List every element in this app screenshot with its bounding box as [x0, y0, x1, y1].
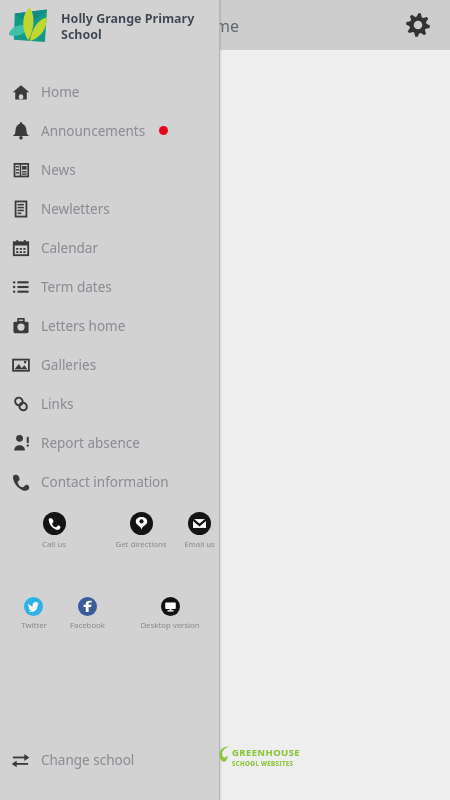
- staticText: Letters home: [41, 317, 126, 335]
- staticText: Term dates: [41, 278, 112, 296]
- button[interactable]: Holly Grange Primary School: [0, 0, 220, 52]
- button[interactable]: News: [0, 150, 220, 189]
- button[interactable]: Galleries: [0, 345, 220, 384]
- button[interactable]: Report absence: [0, 423, 220, 462]
- button[interactable]: Newletters: [0, 189, 220, 228]
- staticText: Home: [41, 83, 80, 101]
- staticText: News: [41, 161, 76, 179]
- button[interactable]: Change school: [0, 737, 220, 783]
- button[interactable]: Call us: [31, 512, 77, 550]
- button[interactable]: Announcements: [0, 111, 220, 150]
- staticText: Call us: [42, 539, 66, 550]
- staticText: Get directions: [115, 539, 167, 550]
- staticText: Galleries: [41, 356, 97, 374]
- button[interactable]: Email us: [178, 512, 220, 550]
- staticText: Desktop version: [140, 620, 200, 631]
- staticText: Change school: [41, 751, 135, 769]
- staticText: Contact information: [41, 473, 169, 491]
- button[interactable]: Get directions: [108, 512, 174, 550]
- staticText: Newletters: [41, 200, 110, 218]
- staticText: Welcome: [170, 15, 240, 37]
- staticText: Announcements: [41, 122, 146, 140]
- button[interactable]: Twitter: [14, 597, 53, 631]
- staticText: Email us: [184, 539, 215, 550]
- button[interactable]: Facebook: [64, 597, 110, 631]
- button[interactable]: Links: [0, 384, 220, 423]
- button[interactable]: Letters home: [0, 306, 220, 345]
- staticText: Twitter: [21, 620, 47, 631]
- button[interactable]: Desktop version: [133, 597, 207, 631]
- staticText: GREENHOUSE: [232, 746, 300, 759]
- button[interactable]: Contact information: [0, 462, 220, 501]
- button[interactable]: Calendar: [0, 228, 220, 267]
- staticText: Facebook: [70, 620, 105, 631]
- staticText: Report absence: [41, 434, 140, 452]
- staticText: Calendar: [41, 239, 98, 257]
- button[interactable]: Settings: [398, 5, 438, 45]
- staticText: SCHOOL WEBSITES: [232, 759, 294, 766]
- button[interactable]: Term dates: [0, 267, 220, 306]
- staticText: Holly Grange Primary School: [61, 10, 195, 42]
- button[interactable]: Home: [0, 72, 220, 111]
- staticText: Links: [41, 395, 74, 413]
